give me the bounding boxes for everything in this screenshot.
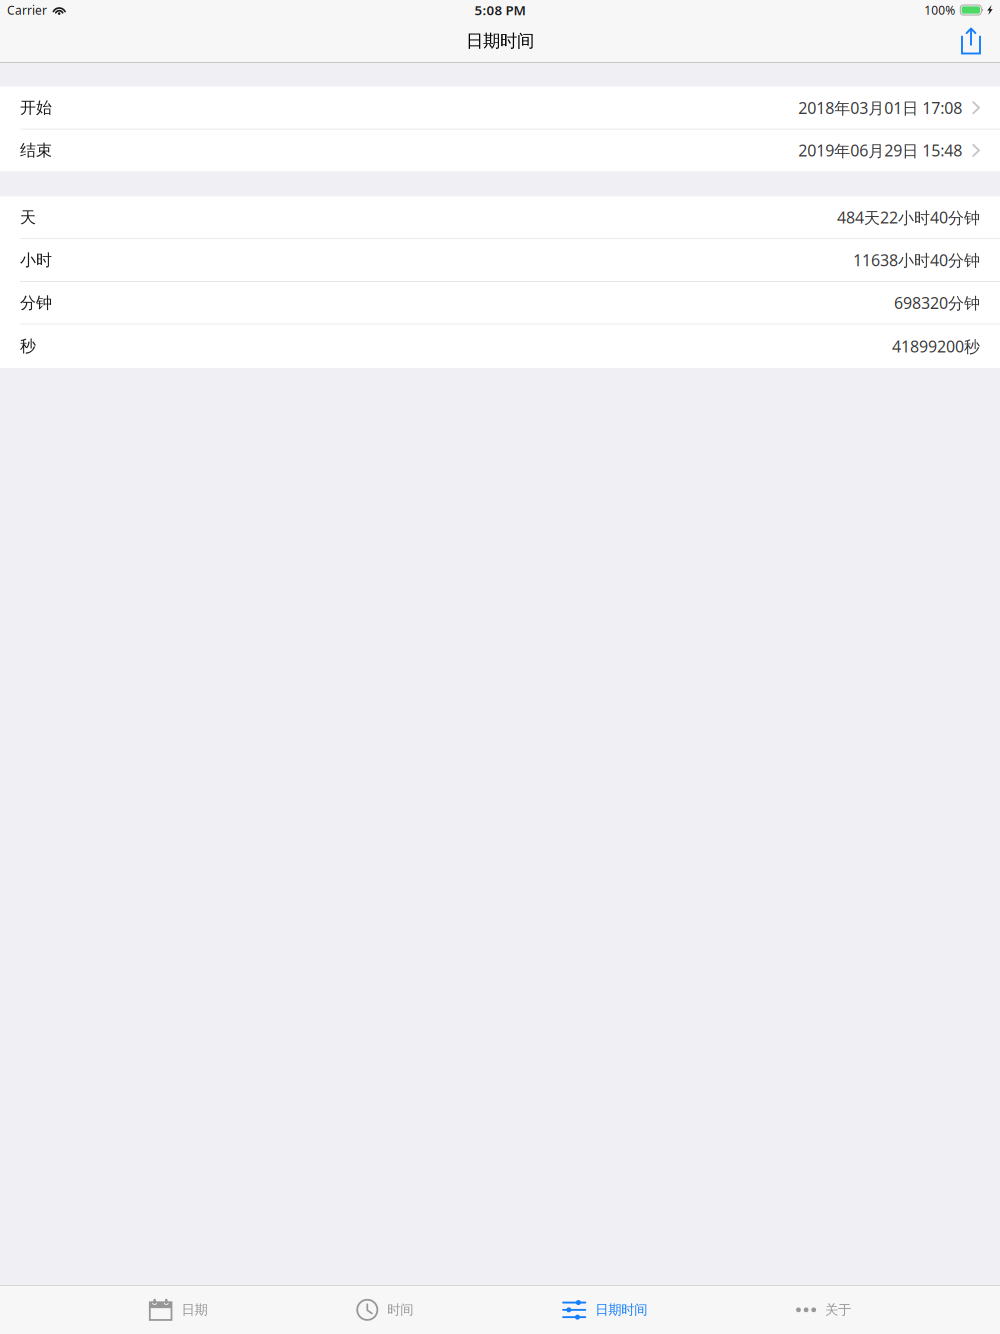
staticText: 11638小时40分钟 [853, 249, 980, 271]
staticText: 100% [924, 2, 955, 18]
staticText: 日期时间 [466, 30, 534, 52]
staticText: 开始 [20, 98, 52, 118]
button[interactable]: 天 [0, 197, 1000, 239]
button[interactable]: 开始 [0, 87, 1000, 130]
staticText: 41899200秒 [892, 336, 980, 357]
staticText: 关于 [825, 1302, 851, 1318]
staticText: 5:08 PM [474, 1, 525, 19]
staticText: 2018年03月01日 17:08 [798, 97, 962, 118]
staticText: 698320分钟 [894, 292, 980, 313]
button[interactable]: Share [951, 20, 1000, 61]
staticText: 日期时间 [595, 1302, 647, 1318]
button[interactable]: 关于 [796, 1285, 851, 1334]
button[interactable]: 结束 [0, 130, 1000, 171]
button[interactable]: 小时 [0, 239, 1000, 282]
button[interactable]: 秒 [0, 325, 1000, 368]
staticText: 时间 [387, 1302, 413, 1318]
staticText: Carrier [7, 2, 47, 18]
button[interactable]: 日期 [149, 1285, 207, 1334]
staticText: 结束 [20, 141, 52, 160]
button[interactable]: 分钟 [0, 282, 1000, 325]
staticText: 日期 [181, 1302, 207, 1318]
staticText: 484天22小时40分钟 [837, 207, 980, 228]
staticText: 秒 [20, 336, 36, 356]
staticText: 2019年06月29日 15:48 [798, 140, 962, 161]
staticText: 天 [20, 208, 36, 227]
button[interactable]: 时间 [356, 1285, 413, 1334]
button[interactable]: 日期时间 [562, 1285, 647, 1334]
staticText: 小时 [20, 250, 52, 270]
staticText: 分钟 [20, 293, 52, 313]
